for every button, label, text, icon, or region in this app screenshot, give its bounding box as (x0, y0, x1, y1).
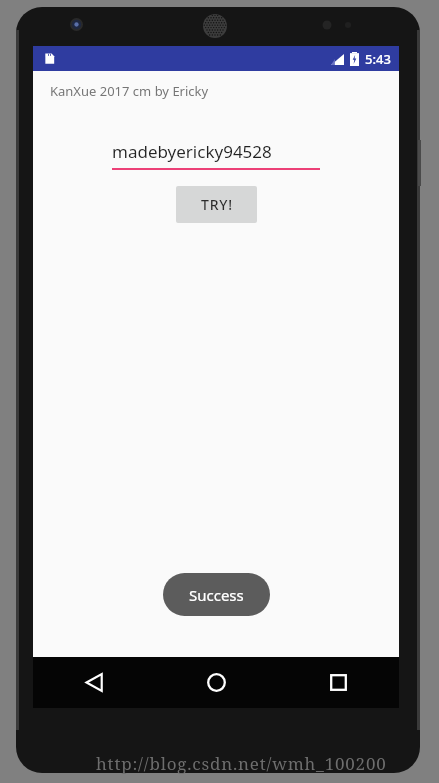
button[interactable]: TRY! (176, 186, 257, 223)
staticText: TRY! (201, 195, 233, 214)
staticText: Success (189, 585, 244, 605)
button[interactable]: Back (33, 657, 155, 708)
staticText: 5:43 (365, 50, 391, 68)
button[interactable]: Recent apps (277, 657, 399, 708)
button[interactable]: Home (155, 657, 277, 708)
staticText: madebyericky94528 (112, 140, 272, 163)
staticText: http://blog.csdn.net/wmh_100200 (96, 752, 387, 775)
button[interactable]: madebyericky94528 (112, 140, 320, 170)
staticText: KanXue 2017 cm by Ericky (50, 82, 209, 100)
